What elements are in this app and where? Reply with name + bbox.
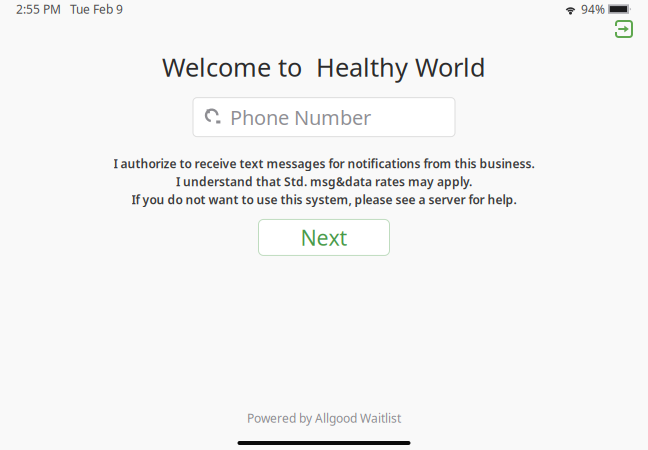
staticText: I authorize to receive text messages for… [113,156,534,171]
staticText: Powered by Allgood Waitlist [247,410,401,426]
staticText: Welcome to Healthy World [162,50,486,84]
button[interactable]: Next [258,219,389,255]
staticText: Next [300,223,347,252]
staticText: I understand that Std. msg&data rates ma… [176,174,472,189]
staticText: 2:55 PM [16,1,61,17]
staticText: If you do not want to use this system, p… [131,191,516,207]
staticText: 94% [581,1,605,17]
button[interactable]: Sign in [610,18,638,40]
staticText: Phone Number [230,104,371,130]
staticText: Tue Feb 9 [70,1,123,17]
